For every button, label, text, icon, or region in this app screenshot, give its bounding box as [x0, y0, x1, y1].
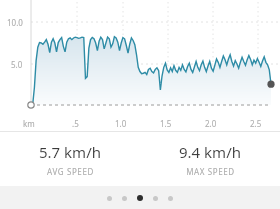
button[interactable]: Page 2	[122, 196, 127, 201]
staticText: 2.0	[205, 118, 217, 129]
staticText: 1.0	[115, 118, 127, 129]
button[interactable]: 9.4 km/h	[140, 142, 280, 177]
staticText: 10.0	[7, 17, 23, 28]
staticText: .5	[72, 118, 79, 129]
button[interactable]: 5.7 km/h	[0, 142, 140, 177]
staticText: 5.7 km/h	[39, 142, 101, 162]
button[interactable]: Page 1	[107, 196, 112, 201]
staticText: 9.4 km/h	[179, 142, 241, 162]
staticText: 1.5	[160, 118, 172, 129]
staticText: 5.0	[11, 59, 23, 70]
button[interactable]: Page 3	[137, 195, 143, 201]
button[interactable]: Page 5	[168, 196, 173, 201]
staticText: MAX SPEED	[186, 166, 235, 177]
staticText: km	[23, 118, 35, 129]
button[interactable]: Page 4	[153, 196, 158, 201]
staticText: 2.5	[250, 118, 262, 129]
staticText: AVG SPEED	[47, 166, 94, 177]
